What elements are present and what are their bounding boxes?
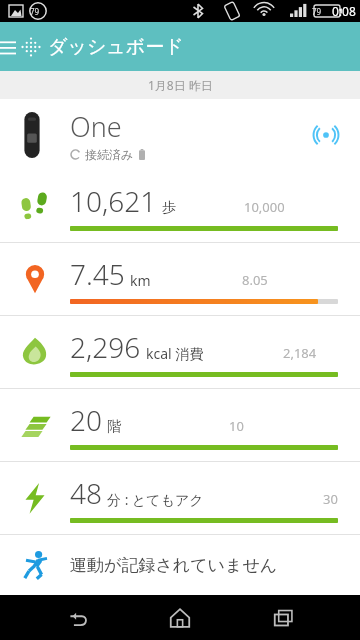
staticText: 20: [70, 401, 102, 439]
staticText: 運動が記録されていません: [70, 555, 278, 576]
staticText: 2,296: [70, 328, 141, 366]
button[interactable]: 2,296: [0, 316, 360, 388]
staticText: 2,184: [283, 344, 317, 362]
staticText: km: [130, 271, 151, 290]
staticText: 30: [323, 490, 338, 508]
button[interactable]: Menu: [0, 27, 26, 67]
staticText: 7.45: [70, 255, 125, 293]
staticText: 分 : とてもアクティブ: [107, 490, 215, 509]
button[interactable]: Sync device: [306, 115, 346, 155]
staticText: 0:08: [332, 3, 356, 19]
staticText: 歩: [162, 199, 176, 217]
button[interactable]: 7.45: [0, 243, 360, 315]
staticText: 接続済み: [85, 147, 134, 162]
staticText: 10: [229, 417, 244, 435]
staticText: ダッシュボード: [48, 35, 184, 59]
button[interactable]: Back: [50, 595, 104, 640]
staticText: 1月8日 昨日: [148, 77, 213, 93]
other: Fitbit logo: [18, 34, 44, 60]
button[interactable]: 48: [0, 462, 360, 534]
button[interactable]: 20: [0, 389, 360, 461]
staticText: 階: [107, 418, 121, 436]
button[interactable]: Recent apps: [257, 595, 311, 640]
staticText: 10,621: [70, 182, 157, 220]
button[interactable]: 運動が記録されていません: [0, 535, 360, 595]
staticText: kcal 消費: [146, 344, 204, 363]
staticText: 79: [312, 6, 322, 17]
button[interactable]: Home: [153, 595, 207, 640]
button[interactable]: 10,621: [0, 170, 360, 242]
staticText: 8.05: [242, 271, 268, 289]
staticText: 79: [30, 6, 40, 17]
staticText: One: [70, 108, 122, 145]
staticText: 48: [70, 474, 102, 512]
staticText: 10,000: [244, 198, 285, 216]
